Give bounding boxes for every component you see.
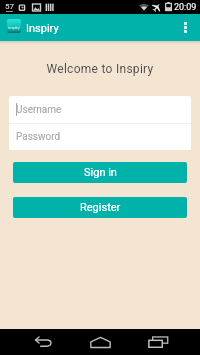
staticText: Sign in: [84, 166, 117, 179]
button[interactable]: More options: [175, 14, 195, 41]
staticText: 57: [5, 2, 14, 11]
staticText: Password: [16, 131, 61, 143]
staticText: Welcome to Inspiry: [0, 62, 200, 76]
button[interactable]: Password: [9, 124, 191, 150]
button[interactable]: Recent apps: [143, 329, 173, 355]
button[interactable]: Inspiry app icon: [7, 19, 21, 33]
button[interactable]: Home: [85, 329, 115, 355]
staticText: Register: [80, 201, 121, 214]
staticText: Username: [16, 104, 62, 116]
staticText: 20:09: [174, 2, 197, 13]
button[interactable]: Register: [13, 197, 187, 218]
button[interactable]: Sign in: [13, 162, 187, 183]
staticText: Inspiry: [26, 22, 59, 35]
button[interactable]: Username: [9, 96, 191, 123]
button[interactable]: Back: [28, 329, 58, 355]
staticText: inspiry: [8, 25, 20, 30]
